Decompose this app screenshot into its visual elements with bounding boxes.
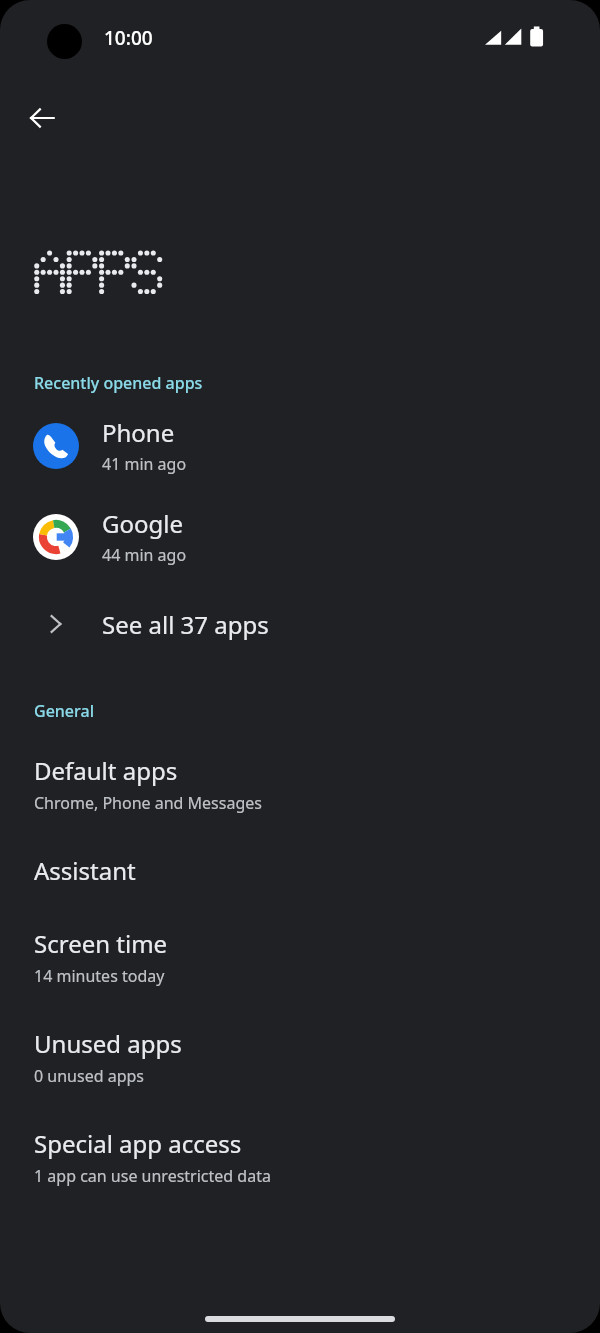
staticText: 44 min ago (102, 544, 187, 566)
staticText: Recently opened apps (34, 372, 203, 394)
button[interactable]: Unused apps (0, 1025, 600, 1089)
button[interactable]: Google (0, 503, 600, 570)
button[interactable]: Back (18, 94, 66, 142)
staticText: 41 min ago (102, 453, 187, 475)
staticText: Screen time (34, 927, 168, 960)
staticText: See all 37 apps (102, 608, 269, 641)
staticText: Assistant (34, 854, 136, 887)
button[interactable]: Screen time (0, 925, 600, 989)
staticText: Default apps (34, 754, 178, 787)
staticText: 0 unused apps (34, 1065, 144, 1087)
button[interactable]: Default apps (0, 752, 600, 816)
staticText: Chrome, Phone and Messages (34, 792, 262, 814)
staticText: 1 app can use unrestricted data (34, 1165, 271, 1187)
button[interactable]: Assistant (0, 852, 600, 889)
staticText: Google (102, 507, 183, 540)
staticText: 14 minutes today (34, 965, 165, 987)
staticText: Unused apps (34, 1027, 182, 1060)
staticText: General (34, 700, 94, 722)
button[interactable]: Special app access (0, 1125, 600, 1189)
button[interactable]: Phone (0, 412, 600, 479)
staticText: Phone (102, 416, 175, 449)
button[interactable]: See all 37 apps (0, 592, 600, 656)
staticText: Special app access (34, 1127, 242, 1160)
staticText: 10:00 (104, 25, 153, 51)
